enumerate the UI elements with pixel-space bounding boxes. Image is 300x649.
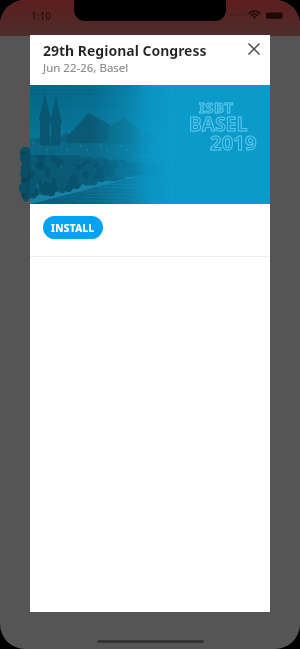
staticText: 29th Regional Congress [43,41,207,60]
staticText: 1:10 [31,9,51,23]
button[interactable]: Close [241,36,267,62]
staticText: BASEL [189,111,248,137]
staticText: Jun 22-26, Basel [43,60,129,76]
staticText: INSTALL [51,221,95,235]
button[interactable]: INSTALL [43,216,103,239]
staticText: ISBT [199,97,234,117]
staticText: 2019 [210,129,257,156]
